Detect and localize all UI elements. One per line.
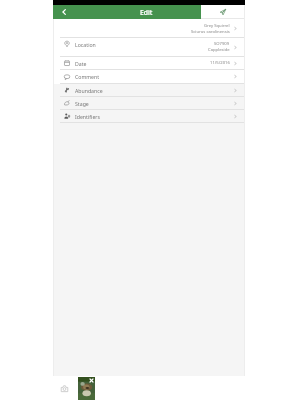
- staticText: Abundance: [75, 87, 103, 94]
- staticText: Sciurus carolinensis: [191, 29, 230, 35]
- button[interactable]: Back: [53, 5, 73, 19]
- button[interactable]: Comment: [53, 70, 245, 84]
- button[interactable]: Stage: [53, 97, 245, 110]
- staticText: Location: [75, 41, 96, 48]
- button[interactable]: Send: [201, 5, 245, 19]
- staticText: Date: [75, 60, 87, 67]
- staticText: 11/5/2016: [210, 60, 230, 66]
- button[interactable]: Remove photo: [88, 377, 94, 383]
- staticText: Grey Squirrel: [204, 23, 230, 29]
- staticText: Identifiers: [75, 113, 100, 120]
- staticText: Comment: [75, 73, 100, 80]
- button[interactable]: Add photo: [59, 383, 70, 394]
- staticText: Edit: [140, 8, 153, 17]
- button[interactable]: Identifiers: [53, 110, 245, 123]
- button[interactable]: Grey Squirrel: [53, 19, 245, 38]
- button[interactable]: Date: [53, 57, 245, 70]
- staticText: Cappleside: [208, 47, 230, 53]
- staticText: SO7909: [214, 41, 230, 47]
- button[interactable]: Abundance: [53, 84, 245, 97]
- staticText: Stage: [75, 100, 89, 107]
- button[interactable]: Location: [53, 38, 245, 57]
